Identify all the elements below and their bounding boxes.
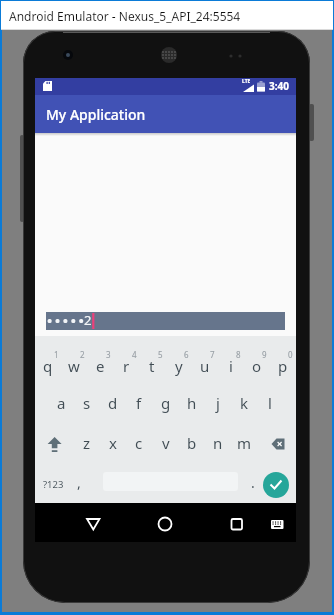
button[interactable]: 2 — [46, 312, 285, 330]
staticText: LTE — [242, 78, 251, 85]
button[interactable]: a — [48, 385, 74, 421]
button[interactable]: q — [35, 348, 61, 384]
staticText: g — [161, 393, 171, 413]
button[interactable]: Android Emulator - Nexus_5_API_24:5554 — [1, 1, 333, 30]
staticText: o — [252, 356, 262, 376]
staticText: c — [135, 433, 143, 453]
button[interactable]: 1 — [35, 336, 296, 503]
staticText: s — [83, 393, 91, 413]
button[interactable] — [221, 509, 252, 540]
button[interactable] — [257, 425, 295, 462]
button[interactable]: k — [231, 385, 257, 421]
button[interactable]: r — [113, 348, 139, 384]
staticText: i — [229, 356, 233, 376]
staticText: , — [77, 473, 81, 492]
button[interactable]: b — [179, 425, 205, 461]
staticText: j — [216, 393, 220, 413]
button[interactable] — [35, 503, 296, 542]
staticText: 3 — [106, 349, 111, 360]
button[interactable]: j — [205, 385, 231, 421]
staticText: 2 — [80, 349, 85, 360]
staticText: k — [240, 393, 249, 413]
button[interactable]: y — [166, 348, 192, 384]
button[interactable]: l — [257, 385, 283, 421]
button[interactable]: , — [66, 465, 92, 499]
staticText: e — [96, 356, 105, 376]
staticText: My Application — [46, 105, 146, 124]
button[interactable] — [36, 425, 74, 462]
button[interactable]: ?123 — [34, 467, 72, 501]
button[interactable]: d — [100, 385, 126, 421]
staticText: 1 — [54, 349, 59, 360]
button[interactable]: s — [74, 385, 100, 421]
staticText: l — [268, 393, 272, 413]
button[interactable]: i — [218, 348, 244, 384]
button[interactable]: x — [100, 425, 126, 461]
staticText: a — [57, 393, 66, 413]
staticText: d — [108, 393, 118, 413]
staticText: 7 — [210, 349, 215, 360]
staticText: 8 — [236, 349, 241, 360]
staticText: z — [83, 433, 91, 453]
button[interactable]: h — [179, 385, 205, 421]
button[interactable] — [262, 509, 293, 540]
button[interactable]: z — [74, 425, 100, 461]
staticText: 5 — [158, 349, 163, 360]
staticText: r — [123, 356, 130, 376]
staticText: n — [213, 433, 223, 453]
staticText: y — [175, 356, 183, 376]
staticText: 3:40 — [269, 79, 289, 93]
button[interactable]: m — [231, 425, 257, 461]
button[interactable]: u — [192, 348, 218, 384]
button[interactable] — [263, 472, 289, 498]
staticText: 9 — [262, 349, 267, 360]
button[interactable]: c — [126, 425, 152, 461]
staticText: 6 — [184, 349, 189, 360]
staticText: ?123 — [43, 478, 64, 491]
button[interactable]: v — [153, 425, 179, 461]
staticText: q — [43, 356, 53, 376]
staticText: u — [200, 356, 210, 376]
staticText: v — [162, 433, 170, 453]
button[interactable]: f — [126, 385, 152, 421]
button[interactable]: n — [205, 425, 231, 461]
staticText: t — [149, 356, 155, 376]
staticText: w — [68, 356, 80, 376]
button[interactable]: My Application — [35, 95, 296, 133]
button[interactable] — [150, 509, 181, 540]
staticText: 2 — [84, 311, 92, 329]
staticText: h — [187, 393, 197, 413]
button[interactable]: p — [270, 348, 296, 384]
button[interactable]: w — [61, 348, 87, 384]
staticText: 4 — [132, 349, 137, 360]
staticText: p — [278, 356, 288, 376]
staticText: 0 — [288, 349, 293, 360]
button[interactable]: t — [139, 348, 165, 384]
staticText: x — [109, 433, 117, 453]
button[interactable] — [78, 509, 109, 540]
staticText: b — [187, 433, 197, 453]
staticText: f — [136, 393, 142, 413]
staticText: . — [251, 473, 255, 492]
staticText: Android Emulator - Nexus_5_API_24:5554 — [9, 8, 241, 24]
button[interactable]: g — [153, 385, 179, 421]
button[interactable]: o — [244, 348, 270, 384]
button[interactable]: e — [87, 348, 113, 384]
button[interactable]: . — [240, 465, 266, 499]
staticText: m — [237, 433, 252, 453]
